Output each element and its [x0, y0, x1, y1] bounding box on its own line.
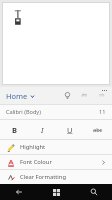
button[interactable]: Redo: [93, 87, 110, 104]
button[interactable]: More options: [96, 87, 112, 94]
button[interactable]: Bold: [0, 120, 28, 139]
button[interactable]: Undo: [76, 87, 93, 104]
button[interactable]: Tell me what you want to do: [59, 87, 76, 104]
button[interactable]: Italic: [28, 120, 56, 139]
button[interactable]: Strikethrough: [84, 120, 112, 139]
staticText: abc: [93, 126, 103, 134]
staticText: U: [67, 125, 73, 135]
button[interactable]: Back: [0, 184, 38, 200]
button[interactable]: Home: [0, 89, 41, 103]
staticText: Home: [6, 91, 28, 101]
staticText: 11: [99, 108, 106, 116]
button[interactable]: Calibri (Body): [0, 105, 112, 119]
button[interactable]: Highlight: [0, 140, 112, 154]
staticText: B: [12, 125, 17, 135]
staticText: Clear Formatting: [20, 173, 66, 181]
staticText: I: [41, 125, 44, 135]
button[interactable]: Search: [75, 184, 112, 200]
button[interactable]: Clear Formatting: [0, 170, 112, 184]
staticText: Calibri (Body): [6, 108, 41, 116]
button[interactable]: Start: [38, 184, 75, 200]
staticText: Font Colour: [20, 158, 52, 166]
staticText: Highlight: [20, 143, 46, 151]
button[interactable]: Font Colour: [0, 155, 112, 169]
button[interactable]: Underline: [56, 120, 84, 139]
